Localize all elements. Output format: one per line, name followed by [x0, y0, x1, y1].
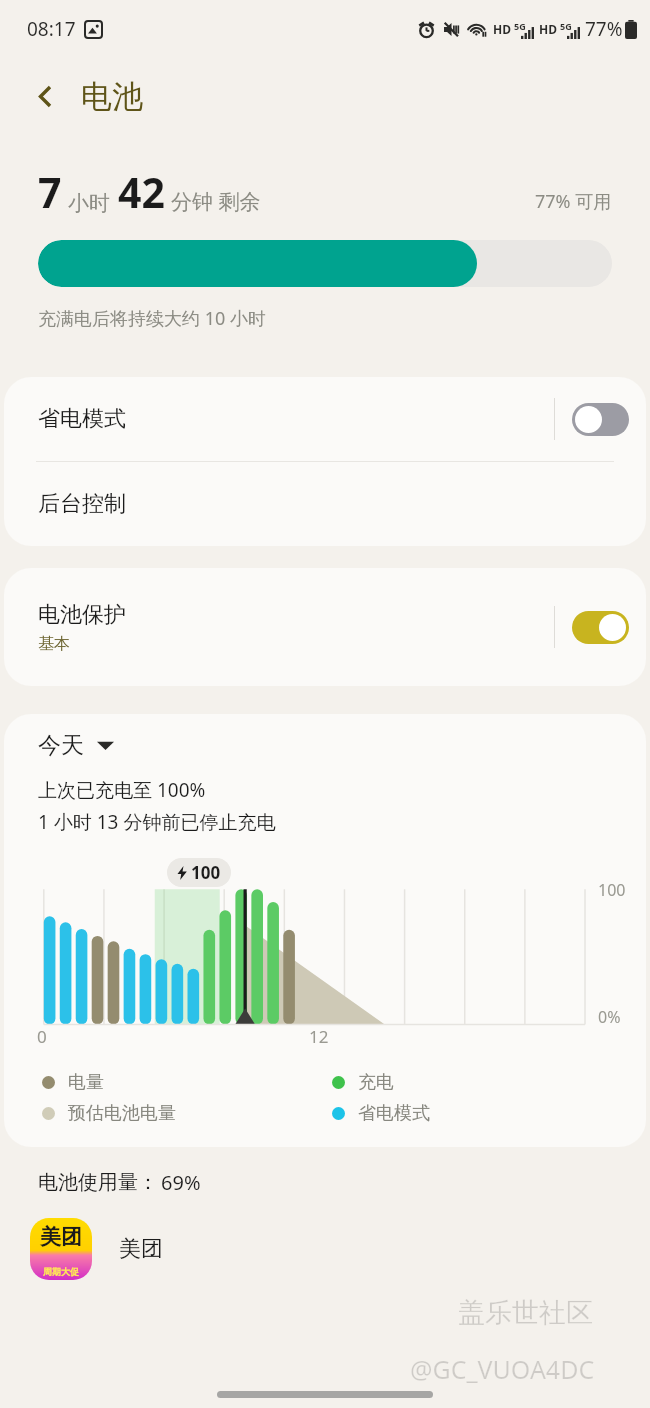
staticText: 基本	[38, 634, 70, 654]
staticText: HD	[539, 21, 557, 37]
staticText: @GC_VUOA4DC	[410, 1352, 595, 1386]
staticText: 今天	[38, 731, 84, 760]
staticText: 分钟 剩余	[171, 187, 261, 216]
staticText: 42	[118, 164, 165, 220]
staticText: 电池保护	[38, 601, 126, 629]
staticText: HD	[493, 21, 511, 37]
staticText: 上次已充电至 100%	[38, 777, 206, 803]
staticText: 小时	[68, 190, 110, 216]
button[interactable]: 省电模式	[4, 377, 646, 461]
staticText: 100	[191, 861, 221, 884]
button[interactable]: Switch on	[572, 611, 629, 644]
staticText: 美团	[119, 1235, 163, 1263]
staticText: 预估电池电量	[68, 1102, 176, 1125]
staticText: 08:17	[27, 16, 76, 42]
staticText: 0	[37, 1025, 47, 1048]
staticText: 1 小时 13 分钟前已停止充电	[38, 809, 276, 835]
staticText: 电池	[81, 77, 143, 116]
staticText: 充电	[358, 1071, 394, 1094]
button[interactable]: Back	[21, 72, 69, 120]
staticText: 7	[38, 164, 62, 220]
staticText: 5G	[514, 20, 526, 32]
staticText: 12	[309, 1025, 329, 1048]
button[interactable]: Switch off	[572, 403, 629, 436]
staticText: 后台控制	[38, 490, 126, 518]
button[interactable]: 美团	[0, 1218, 650, 1280]
staticText: 0%	[598, 1006, 621, 1028]
staticText: 69%	[161, 1169, 201, 1196]
staticText: 省电模式	[358, 1102, 430, 1125]
other: 美团	[30, 1218, 92, 1280]
staticText: 盖乐世社区	[458, 1296, 593, 1330]
staticText: 5G	[560, 20, 572, 32]
button[interactable]: 后台控制	[4, 462, 646, 546]
staticText: 周期大促	[43, 1266, 79, 1277]
staticText: 电量	[68, 1071, 104, 1094]
staticText: 电池使用量：	[38, 1170, 158, 1195]
staticText: 美团	[40, 1224, 82, 1250]
staticText: 充满电后将持续大约 10 小时	[38, 306, 266, 331]
staticText: 100	[598, 879, 626, 901]
staticText: 77%	[585, 16, 623, 42]
button[interactable]: 电池保护	[4, 568, 646, 686]
button[interactable]: 今天	[38, 731, 114, 760]
staticText: 省电模式	[38, 405, 126, 433]
staticText: 77% 可用	[535, 189, 612, 214]
